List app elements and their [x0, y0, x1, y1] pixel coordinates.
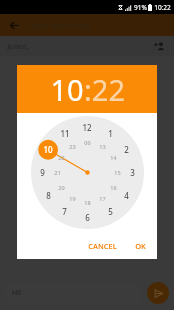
button[interactable]: OK [131, 238, 150, 254]
staticText: 2 [124, 144, 129, 155]
staticText: 23 [69, 143, 76, 150]
staticText: 9 [40, 167, 45, 178]
staticText: 15 [114, 169, 121, 176]
staticText: 11 [60, 128, 70, 139]
staticText: 16 [110, 184, 117, 191]
staticText: 22 [58, 154, 65, 161]
staticText: 91% [134, 3, 147, 12]
staticText: 1 [108, 128, 113, 139]
staticText: 18 [84, 199, 91, 206]
staticText: 20 [58, 184, 65, 191]
staticText: 00 [84, 139, 91, 146]
button[interactable]: Send [147, 282, 169, 304]
staticText: 14 [110, 154, 117, 161]
staticText: 19 [69, 195, 76, 202]
staticText: 17 [99, 195, 106, 202]
staticText: OK [135, 241, 146, 251]
staticText: 10 [43, 144, 53, 155]
staticText: 4 [124, 190, 129, 201]
staticText: 21 [54, 169, 61, 176]
button[interactable]: Back [7, 18, 21, 32]
staticText: Julien, [7, 41, 29, 51]
button[interactable]: Select hour [31, 116, 144, 229]
staticText: :22 [84, 70, 125, 109]
staticText: 5 [108, 206, 113, 217]
staticText: 12 [82, 122, 92, 133]
staticText: 10:22 [154, 3, 171, 12]
staticText: 13 [99, 143, 106, 150]
staticText: 7 [62, 206, 67, 217]
staticText: 10 [50, 70, 84, 109]
staticText: Hi! [12, 288, 21, 298]
button[interactable]: :22 [84, 70, 125, 109]
staticText: 6 [85, 212, 90, 223]
button[interactable]: CANCEL [84, 238, 121, 254]
staticText: 3 [130, 167, 135, 178]
staticText: New message [28, 19, 91, 32]
button[interactable]: Add recipient [152, 39, 167, 54]
staticText: 8 [46, 190, 51, 201]
staticText: CANCEL [88, 241, 117, 251]
button[interactable]: 10 [50, 70, 84, 109]
